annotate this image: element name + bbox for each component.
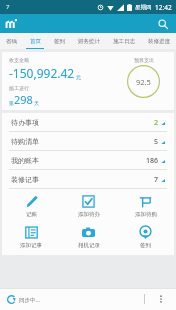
button[interactable]: 签到 bbox=[117, 224, 174, 251]
button[interactable]: 装修进度 bbox=[141, 33, 176, 49]
staticText: 添加待购 bbox=[135, 211, 157, 218]
staticText: 天 bbox=[34, 100, 39, 106]
staticText: 首页 bbox=[30, 38, 41, 45]
staticText: 待办事项 bbox=[11, 118, 39, 127]
staticText: 收支金额 bbox=[9, 57, 29, 63]
staticText: 92.5 bbox=[136, 77, 151, 87]
staticText: 同步中... bbox=[19, 296, 40, 304]
staticText: 装修进度 bbox=[148, 38, 170, 45]
button[interactable]: 待办事项 bbox=[2, 113, 174, 132]
staticText: 我的账本 bbox=[11, 156, 39, 165]
staticText: 财务统计 bbox=[78, 38, 100, 45]
staticText: 预算支出 bbox=[134, 57, 154, 63]
button[interactable]: More options bbox=[153, 291, 169, 307]
button[interactable]: 省钱 bbox=[0, 33, 23, 49]
staticText: 星期四 bbox=[135, 4, 152, 11]
staticText: 省钱 bbox=[6, 38, 17, 45]
staticText: 2 bbox=[154, 118, 159, 128]
button[interactable]: 记账 bbox=[2, 193, 60, 220]
staticText: 装修记事 bbox=[11, 175, 39, 184]
button[interactable]: 财务统计 bbox=[71, 33, 106, 49]
button[interactable]: Search bbox=[155, 16, 171, 32]
staticText: 第 bbox=[9, 100, 14, 106]
staticText: 186 bbox=[146, 156, 159, 166]
staticText: -150,992.42 bbox=[9, 65, 75, 81]
button[interactable]: 我的账本 bbox=[2, 151, 174, 170]
staticText: 签到 bbox=[140, 242, 151, 249]
staticText: 施工日志 bbox=[113, 38, 135, 45]
staticText: 签到 bbox=[54, 38, 65, 45]
staticText: 12:42 bbox=[155, 3, 172, 12]
button[interactable]: 首页 bbox=[23, 33, 47, 49]
button[interactable]: 同步中... bbox=[7, 295, 40, 304]
button[interactable]: 相机记录 bbox=[60, 224, 117, 251]
staticText: 添加记事 bbox=[20, 242, 42, 249]
button[interactable]: 装修记事 bbox=[2, 170, 174, 189]
staticText: 记账 bbox=[26, 211, 37, 218]
staticText: 5 bbox=[154, 137, 159, 147]
button[interactable]: 添加待办 bbox=[60, 193, 117, 220]
button[interactable]: 签到 bbox=[47, 33, 71, 49]
button[interactable]: 施工日志 bbox=[106, 33, 141, 49]
button[interactable]: 添加记事 bbox=[2, 224, 60, 251]
button[interactable]: 待购清单 bbox=[2, 132, 174, 151]
staticText: 添加待办 bbox=[78, 211, 100, 218]
staticText: 7 bbox=[154, 175, 159, 185]
staticText: 元 bbox=[76, 74, 81, 80]
staticText: 施工进行 bbox=[9, 85, 29, 91]
button[interactable]: 添加待购 bbox=[117, 193, 174, 220]
staticText: 待购清单 bbox=[11, 137, 39, 146]
staticText: 7 bbox=[6, 3, 10, 11]
staticText: 298 bbox=[14, 92, 33, 107]
staticText: 相机记录 bbox=[78, 242, 100, 249]
